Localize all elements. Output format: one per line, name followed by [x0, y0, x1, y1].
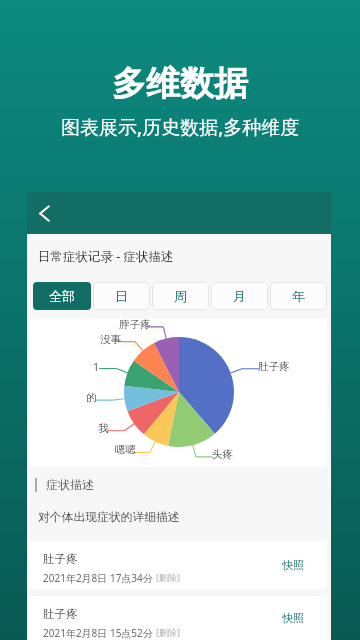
staticText: 2021年2月8日 17点34分: [43, 571, 153, 585]
staticText: 肚子疼: [43, 552, 78, 566]
staticText: 快照: [282, 558, 304, 572]
staticText: 肚子疼: [258, 360, 290, 373]
button[interactable]: 肚子疼: [29, 541, 327, 589]
staticText: 我: [98, 422, 109, 435]
staticText: 全部: [49, 288, 75, 304]
staticText: 头疼: [212, 448, 233, 461]
button[interactable]: 日: [93, 282, 150, 310]
button[interactable]: 肚子疼: [29, 596, 327, 640]
staticText: 2021年2月8日 15点52分: [43, 626, 153, 640]
button[interactable]: Back: [23, 192, 65, 234]
staticText: 年: [292, 288, 305, 304]
staticText: 月: [233, 288, 246, 304]
staticText: 脖子疼: [119, 318, 151, 331]
button[interactable]: 全部: [33, 282, 91, 310]
button[interactable]: 快照: [278, 554, 308, 576]
staticText: 周: [174, 288, 187, 304]
button[interactable]: 周: [152, 282, 209, 310]
staticText: 1: [93, 360, 100, 374]
staticText: 快照: [282, 611, 304, 625]
staticText: 没事: [100, 333, 121, 346]
staticText: 日: [115, 288, 128, 304]
staticText: 嗯嗯: [115, 443, 136, 456]
staticText: 日常症状记录 - 症状描述: [38, 248, 174, 265]
button[interactable]: 年: [270, 282, 327, 310]
button[interactable]: 月: [211, 282, 268, 310]
staticText: [删除]: [156, 626, 180, 638]
staticText: 肚子疼: [43, 607, 78, 621]
staticText: [删除]: [156, 571, 180, 583]
staticText: 图表展示,历史数据,多种维度: [61, 114, 300, 140]
staticText: 症状描述: [46, 477, 94, 492]
staticText: 对个体出现症状的详细描述: [38, 510, 180, 525]
staticText: 的: [86, 391, 97, 404]
button[interactable]: 快照: [278, 607, 308, 629]
staticText: 多维数据: [112, 62, 248, 105]
